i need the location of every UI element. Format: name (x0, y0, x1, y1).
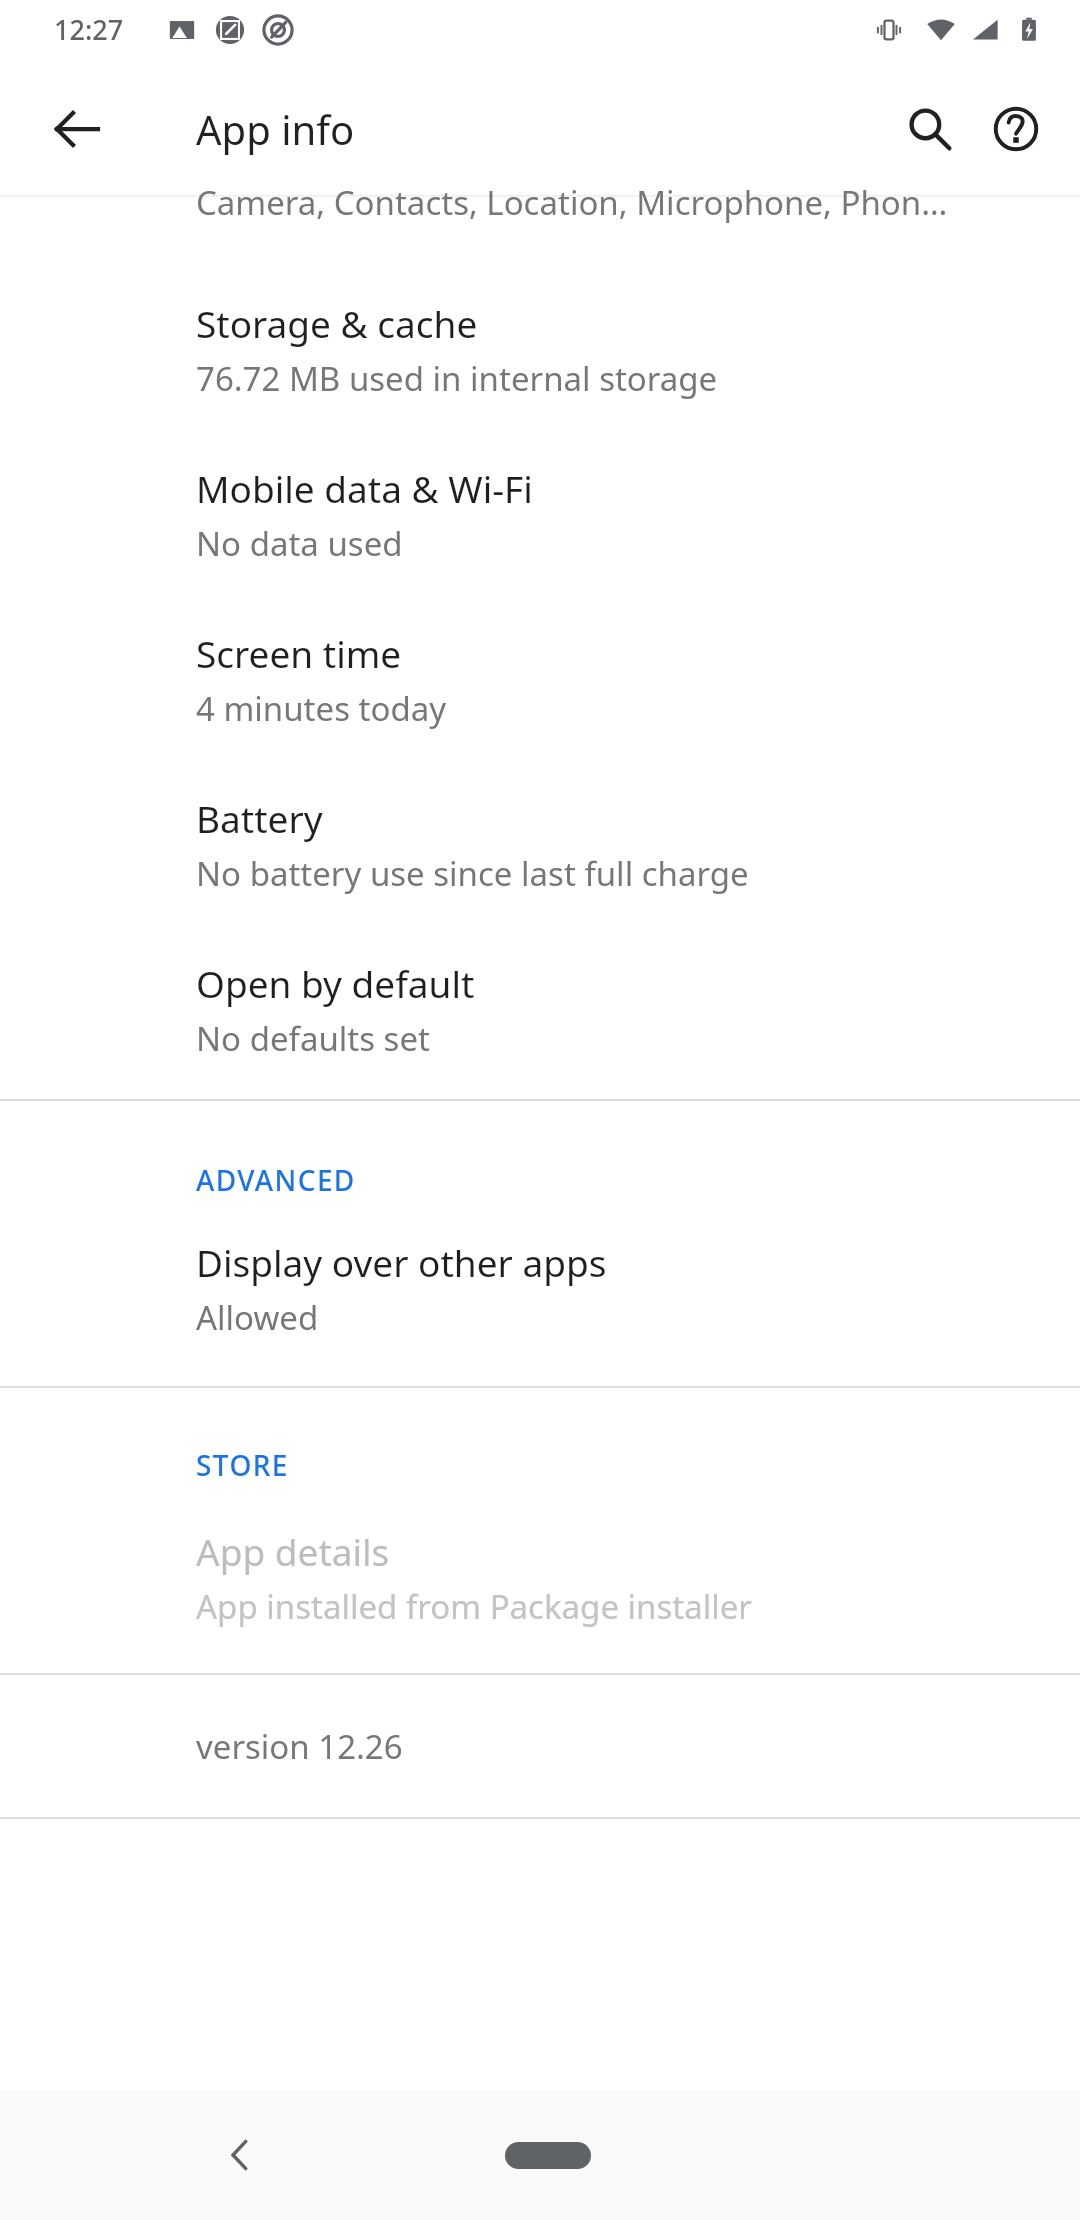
button[interactable]: Open by default (0, 896, 1080, 1061)
button[interactable]: Help (966, 79, 1066, 179)
button[interactable]: Mobile data & Wi-Fi (0, 401, 1080, 566)
staticText: Storage & cache (196, 298, 478, 348)
staticText: App info (196, 102, 355, 156)
staticText: Allowed (196, 1295, 319, 1340)
staticText: 4 minutes today (196, 686, 447, 731)
staticText: 76.72 MB used in internal storage (196, 356, 718, 401)
staticText: No defaults set (196, 1016, 430, 1061)
staticText: Mobile data & Wi-Fi (196, 463, 533, 513)
staticText: 12:27 (54, 11, 124, 48)
button[interactable]: Home (468, 2105, 628, 2205)
staticText: Battery (196, 793, 323, 843)
button[interactable]: Back (29, 81, 125, 177)
button[interactable]: Storage & cache (0, 244, 1080, 401)
staticText: Display over other apps (196, 1237, 607, 1287)
button[interactable]: Screen time (0, 566, 1080, 731)
staticText: Camera, Contacts, Location, Microphone, … (196, 180, 948, 225)
button[interactable]: Battery (0, 731, 1080, 896)
staticText: ADVANCED (196, 1161, 356, 1199)
staticText: App details (196, 1526, 390, 1576)
staticText: Open by default (196, 958, 475, 1008)
staticText: App installed from Package installer (196, 1584, 752, 1629)
staticText: Screen time (196, 628, 402, 678)
staticText: No battery use since last full charge (196, 851, 749, 896)
button[interactable]: Back (186, 2100, 296, 2210)
staticText: No data used (196, 521, 403, 566)
staticText: version 12.26 (196, 1724, 403, 1769)
button[interactable]: Search (880, 79, 980, 179)
button[interactable]: Camera, Contacts, Location, Microphone, … (0, 198, 1080, 244)
staticText: STORE (196, 1446, 289, 1484)
button[interactable]: Display over other apps (0, 1199, 1080, 1340)
